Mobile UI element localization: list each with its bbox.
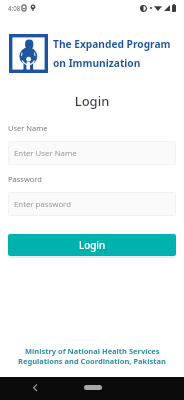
staticText: The Expanded Program: [53, 37, 171, 51]
staticText: Password: [8, 174, 42, 184]
button[interactable]: Home: [84, 385, 102, 390]
staticText: 4:08: [8, 4, 21, 12]
button[interactable]: Enter User Name: [8, 141, 176, 165]
staticText: Enter User Name: [14, 148, 77, 159]
staticText: Login: [79, 239, 106, 252]
staticText: on Immunization: [53, 56, 141, 70]
staticText: User Name: [8, 123, 48, 133]
button[interactable]: Enter password: [8, 192, 176, 216]
staticText: Enter password: [14, 199, 71, 210]
button[interactable]: Back: [30, 382, 42, 394]
button[interactable]: Login: [8, 234, 176, 256]
staticText: Login: [0, 92, 184, 110]
staticText: Ministry of National Health Services: [25, 346, 160, 356]
staticText: Regulations and Coordination, Pakistan: [18, 356, 166, 366]
